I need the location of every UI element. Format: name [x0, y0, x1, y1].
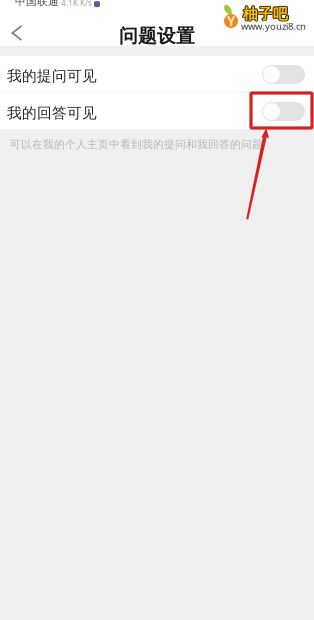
button[interactable]: 我的回答可见 [0, 92, 314, 129]
staticText: 问题设置 [119, 24, 195, 47]
staticText: www.youzi8.cn [241, 20, 306, 32]
staticText: 柚子吧 [243, 4, 288, 22]
staticText: 中国联通 [15, 0, 59, 8]
staticText: 柚子吧 [244, 6, 289, 24]
staticText: 我的回答可见 [7, 104, 97, 122]
staticText: 柚子吧 [243, 5, 288, 23]
staticText: 柚子吧 [244, 5, 289, 23]
staticText: 柚子吧 [242, 4, 287, 22]
staticText: Y [227, 12, 235, 30]
staticText: K/s [80, 0, 92, 8]
staticText: 柚子吧 [242, 6, 287, 24]
staticText: 柚子吧 [243, 6, 288, 24]
staticText: 柚子吧 [242, 5, 287, 23]
button[interactable]: 我的提问可见 [0, 56, 314, 91]
staticText: 4.1K [61, 0, 78, 8]
staticText: 柚子吧 [244, 4, 289, 22]
button[interactable]: Back [5, 22, 29, 44]
staticText: 可以在我的个人主页中看到我的提问和我回答的问题 [10, 138, 263, 151]
staticText: 我的提问可见 [7, 67, 97, 85]
